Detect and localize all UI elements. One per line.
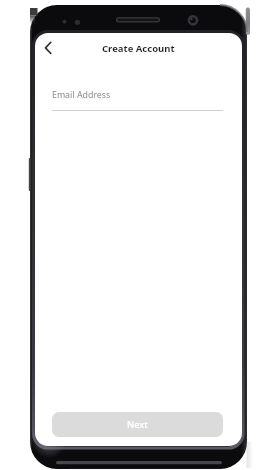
button[interactable] bbox=[38, 37, 60, 59]
button[interactable]: Email Address bbox=[52, 83, 223, 111]
button[interactable]: Next bbox=[52, 412, 223, 437]
staticText: Next bbox=[127, 418, 148, 431]
staticText: Email Address bbox=[52, 89, 111, 101]
staticText: Create Account bbox=[102, 42, 175, 55]
